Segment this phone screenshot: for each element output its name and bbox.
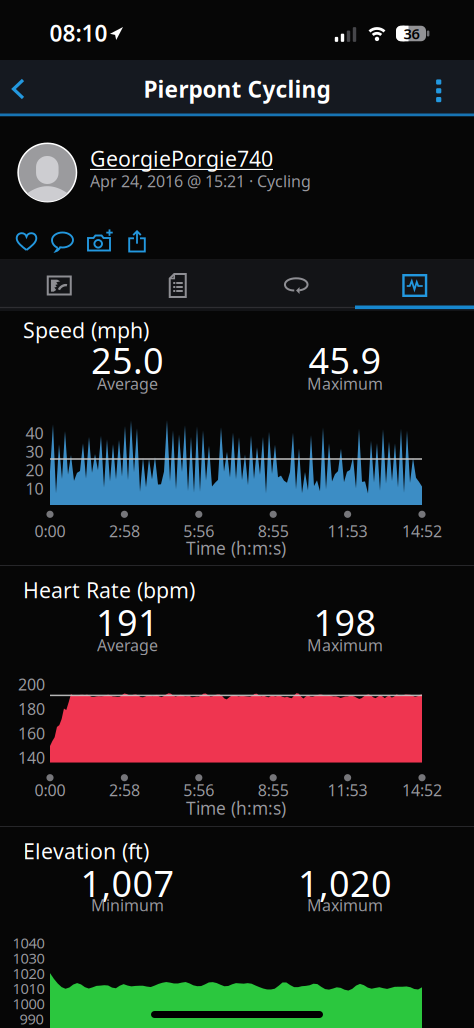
button[interactable]: Details <box>118 260 237 311</box>
staticText: Pierpont Cycling <box>143 74 330 104</box>
button[interactable]: Stats <box>0 260 118 311</box>
button[interactable]: Back <box>11 78 25 99</box>
staticText: 36 <box>403 24 419 43</box>
staticText: 1030 <box>12 948 44 968</box>
staticText: 8:55 <box>258 779 289 801</box>
staticText: 160 <box>18 723 45 744</box>
staticText: Time (h:m:s) <box>186 796 286 819</box>
staticText: 11:53 <box>328 779 368 801</box>
button[interactable]: Charts <box>355 260 474 311</box>
staticText: Elevation (ft) <box>23 837 149 865</box>
staticText: Average <box>97 634 158 656</box>
staticText: 40 <box>25 422 43 444</box>
staticText: 0:00 <box>34 520 65 542</box>
staticText: Heart Rate (bpm) <box>23 576 195 604</box>
button[interactable]: Like <box>15 230 37 252</box>
staticText: 1040 <box>12 933 44 953</box>
staticText: Maximum <box>307 634 383 656</box>
button[interactable]: Add photo <box>87 230 113 252</box>
staticText: 990 <box>19 1009 43 1028</box>
staticText: Maximum <box>307 373 383 394</box>
staticText: 14:52 <box>402 520 442 542</box>
staticText: 198 <box>313 598 376 646</box>
staticText: 2:58 <box>109 779 140 801</box>
staticText: 8:55 <box>258 520 289 542</box>
staticText: 20 <box>25 459 43 481</box>
staticText: Minimum <box>91 894 164 916</box>
staticText: 08:10 <box>49 18 107 48</box>
staticText: 25.0 <box>91 336 164 384</box>
staticText: 200 <box>18 674 45 695</box>
staticText: 14:52 <box>402 779 442 801</box>
staticText: 1020 <box>12 963 44 983</box>
staticText: 0:00 <box>34 779 65 801</box>
button[interactable]: Comment <box>50 230 74 252</box>
staticText: 140 <box>18 747 45 768</box>
staticText: 30 <box>25 441 43 462</box>
staticText: 1,020 <box>298 859 392 907</box>
button[interactable]: Laps <box>237 260 355 311</box>
staticText: 180 <box>18 698 45 719</box>
staticText: 5:56 <box>183 520 214 542</box>
staticText: Maximum <box>307 894 383 916</box>
staticText: Apr 24, 2016 @ 15:21 · Cycling <box>90 170 311 192</box>
staticText: 10 <box>25 478 43 499</box>
button[interactable]: More options <box>436 79 441 102</box>
button[interactable]: Share <box>128 230 146 252</box>
staticText: GeorgiePorgie740 <box>90 144 273 173</box>
staticText: 191 <box>96 598 159 646</box>
staticText: 11:53 <box>328 520 368 542</box>
staticText: Average <box>97 373 158 394</box>
staticText: 2:58 <box>109 520 140 542</box>
staticText: Time (h:m:s) <box>186 536 286 559</box>
staticText: 1000 <box>12 994 44 1013</box>
button[interactable]: GeorgiePorgie740 <box>90 144 273 173</box>
staticText: 1010 <box>12 979 44 998</box>
staticText: 1,007 <box>80 859 174 907</box>
staticText: Speed (mph) <box>23 316 149 344</box>
staticText: 5:56 <box>183 779 214 801</box>
staticText: 45.9 <box>308 336 381 384</box>
